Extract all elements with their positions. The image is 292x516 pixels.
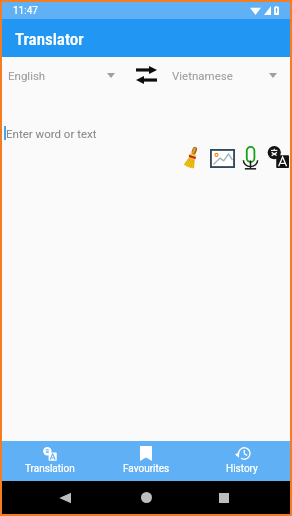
button[interactable]: Pick image (208, 147, 236, 169)
button[interactable]: Vietnamese (164, 55, 290, 95)
button[interactable]: Favourites (98, 441, 194, 481)
button[interactable]: Recent apps (211, 486, 237, 509)
button[interactable]: Swap languages (128, 55, 164, 95)
staticText: Translator (15, 29, 84, 49)
staticText: Translation (25, 463, 75, 475)
staticText: History (226, 463, 258, 475)
button[interactable]: Translation (2, 441, 98, 481)
staticText: 11:47 (13, 5, 38, 17)
staticText: English (8, 69, 46, 82)
staticText: Favourites (123, 463, 170, 475)
button[interactable]: Back (52, 486, 78, 509)
button[interactable]: Home (133, 486, 159, 509)
button[interactable]: Clear text (179, 143, 205, 169)
button[interactable]: Voice input (238, 145, 262, 171)
button[interactable]: Translate (266, 145, 290, 169)
button[interactable]: English (2, 55, 128, 95)
button[interactable]: History (194, 441, 290, 481)
staticText: Enter word or text (6, 127, 97, 140)
staticText: Vietnamese (172, 69, 233, 82)
